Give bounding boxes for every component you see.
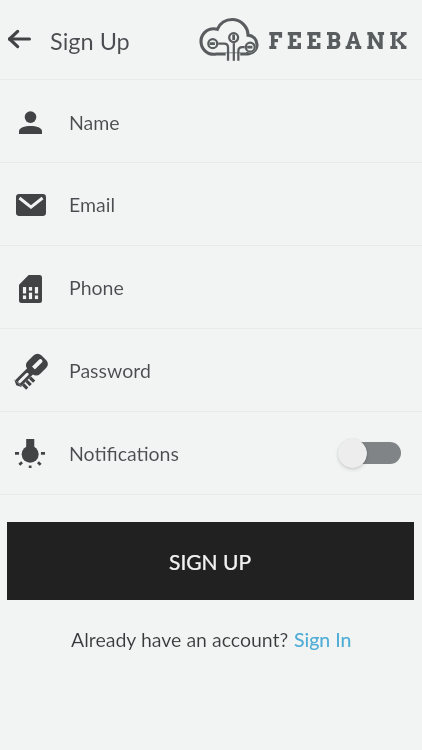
staticText: SIGN UP (169, 549, 252, 574)
staticText: Name (69, 111, 120, 134)
staticText: Password (69, 359, 151, 382)
staticText: Email (69, 193, 115, 216)
staticText: Sign In (294, 628, 352, 651)
staticText: Already have an account? (71, 628, 294, 651)
staticText: Notifications (69, 442, 179, 465)
button[interactable]: SIGN UP (7, 522, 414, 600)
button[interactable]: Name (0, 79, 422, 163)
button[interactable]: Password (0, 328, 422, 411)
button[interactable]: Back (0, 17, 42, 61)
button[interactable]: Sign In (294, 628, 352, 651)
button[interactable]: Phone (0, 245, 422, 328)
button[interactable]: Email (0, 162, 422, 245)
staticText: Sign Up (50, 27, 130, 55)
staticText: FEEBANK (268, 27, 412, 54)
button[interactable]: Notifications toggle (338, 438, 401, 468)
staticText: Phone (69, 276, 124, 299)
